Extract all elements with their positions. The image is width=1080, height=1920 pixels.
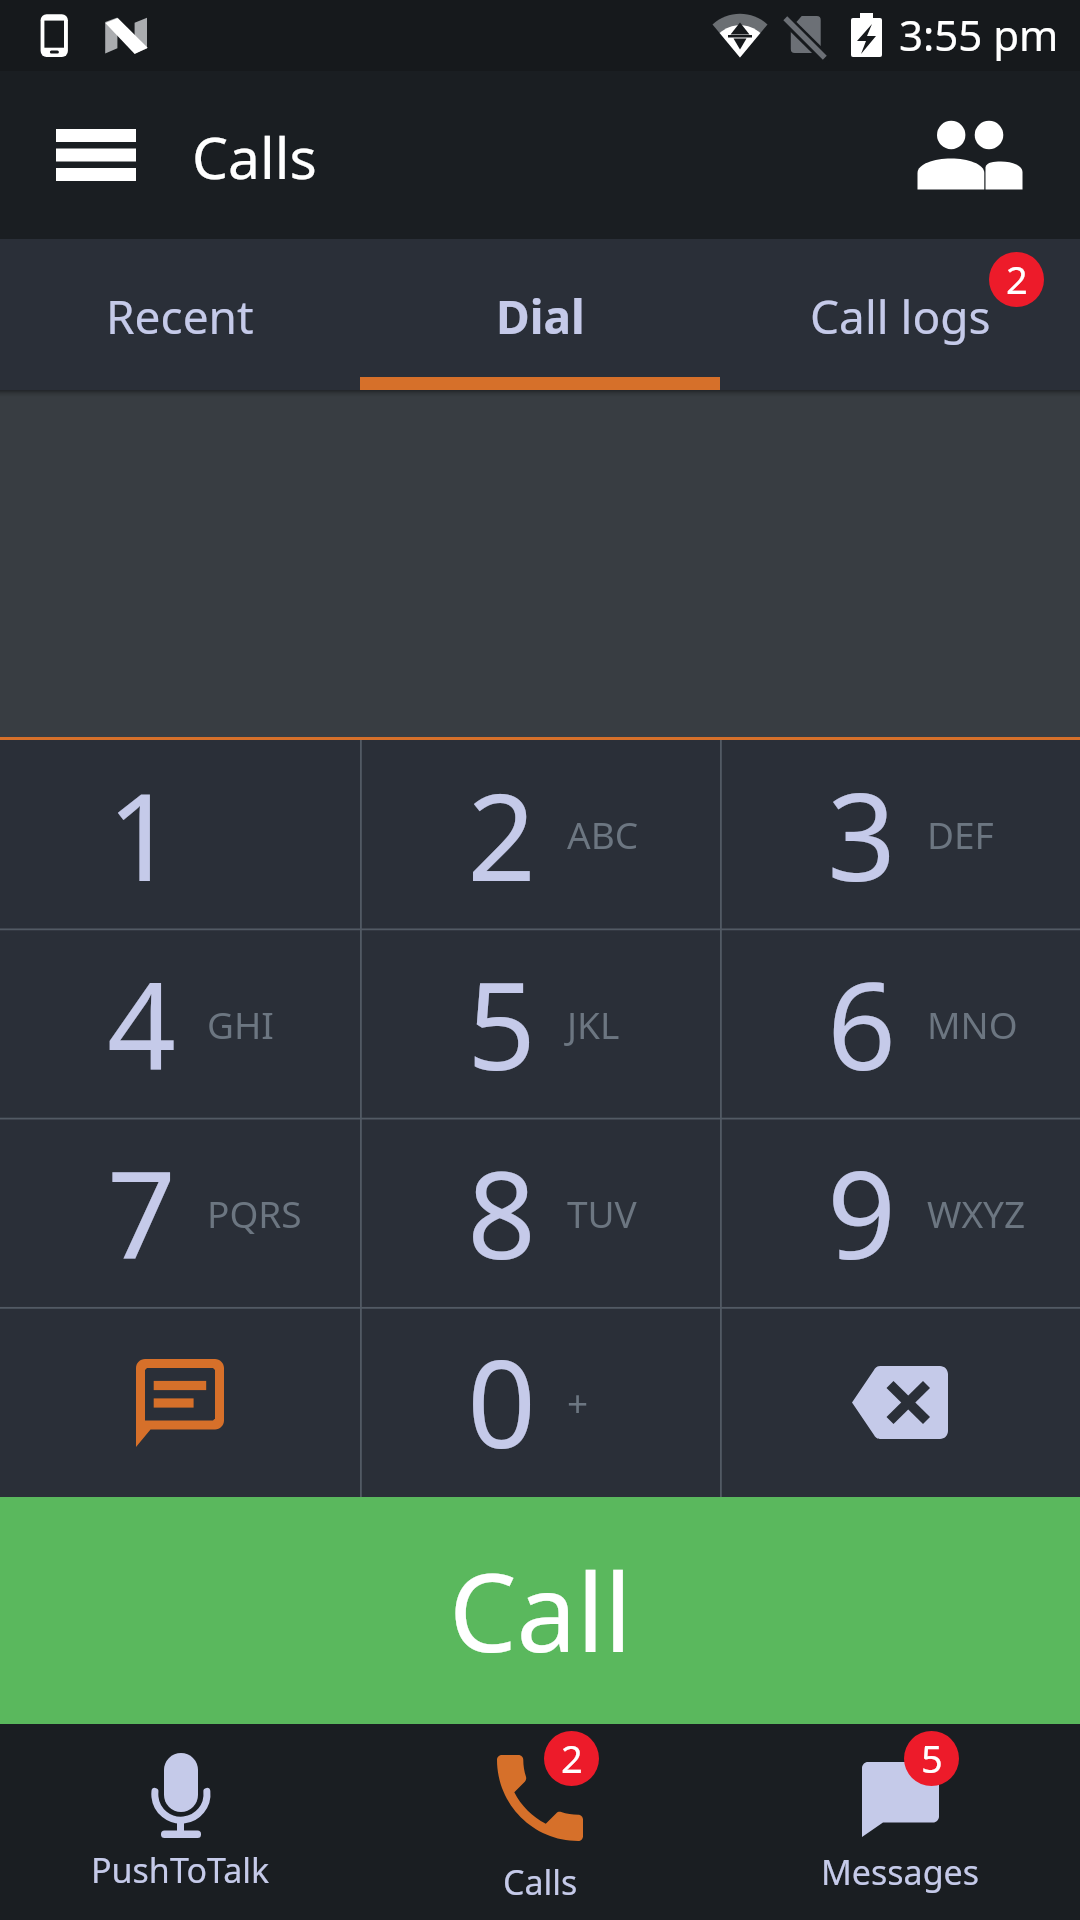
staticText: 8 (467, 1131, 536, 1294)
staticText: 3:55 pm (899, 6, 1059, 63)
button[interactable]: Dial (360, 239, 720, 390)
button[interactable]: Backspace (720, 1308, 1080, 1497)
staticText: 6 (827, 942, 896, 1105)
button[interactable]: PushToTalk (0, 1724, 360, 1920)
other: Backspace (852, 1366, 948, 1439)
staticText: 5 (921, 1732, 943, 1784)
staticText: 5 (467, 942, 536, 1105)
button[interactable]: 8 (360, 1119, 720, 1308)
staticText: Call logs (810, 285, 991, 348)
staticText: + (567, 1377, 589, 1427)
button[interactable]: Calls (360, 1724, 720, 1920)
staticText: WXYZ (927, 1188, 1026, 1238)
button[interactable]: 0 (360, 1308, 720, 1497)
staticText: 3 (827, 753, 896, 916)
button[interactable]: 7 (0, 1119, 360, 1308)
staticText: PushToTalk (91, 1847, 270, 1893)
button[interactable]: Messages (720, 1724, 1080, 1920)
other: Send message (136, 1359, 224, 1447)
staticText: Messages (821, 1849, 980, 1895)
staticText: 7 (107, 1131, 176, 1294)
staticText: MNO (927, 999, 1018, 1049)
staticText: 0 (467, 1320, 536, 1483)
button[interactable]: 9 (720, 1119, 1080, 1308)
button[interactable]: Contacts (910, 95, 1030, 215)
button[interactable]: 2 (360, 740, 720, 930)
button[interactable]: 6 (720, 930, 1080, 1119)
staticText: GHI (207, 999, 274, 1049)
staticText: Call (449, 1538, 632, 1684)
staticText: 1 (107, 753, 176, 916)
staticText: 2 (467, 753, 536, 916)
staticText: TUV (567, 1188, 637, 1238)
button[interactable]: Call (0, 1497, 1080, 1724)
button[interactable]: 4 (0, 930, 360, 1119)
staticText: PQRS (207, 1188, 302, 1238)
staticText: 9 (827, 1131, 896, 1294)
button[interactable]: Recent (0, 239, 360, 390)
staticText: ABC (567, 809, 639, 859)
button[interactable]: 3 (720, 740, 1080, 930)
staticText: 2 (1006, 253, 1028, 305)
staticText: DEF (927, 809, 994, 859)
button[interactable]: 5 (360, 930, 720, 1119)
button[interactable]: Open navigation menu (36, 95, 156, 215)
staticText: Calls (192, 118, 317, 196)
staticText: JKL (567, 999, 620, 1049)
staticText: 2 (561, 1732, 583, 1784)
staticText: Calls (503, 1859, 578, 1905)
button[interactable]: Call logs (720, 239, 1080, 390)
staticText: Dial (496, 285, 585, 348)
staticText: Recent (106, 285, 254, 348)
button[interactable]: 1 (0, 740, 360, 930)
button[interactable]: Send message (0, 1308, 360, 1497)
staticText: 4 (107, 942, 176, 1105)
